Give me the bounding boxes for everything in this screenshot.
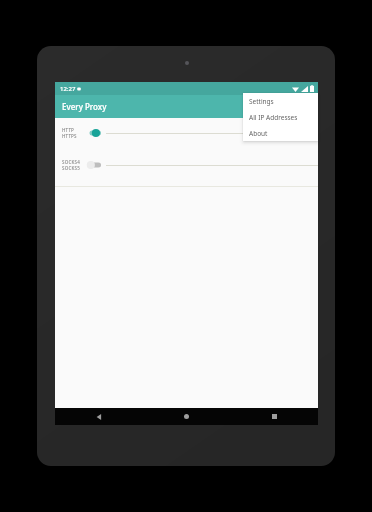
button[interactable]: About bbox=[243, 125, 318, 141]
button[interactable]: Recent apps bbox=[230, 408, 318, 425]
button[interactable]: Home bbox=[142, 408, 230, 425]
staticText: All IP Addresses bbox=[249, 113, 298, 122]
button[interactable]: Disable proxy bbox=[86, 127, 102, 139]
staticText: Settings bbox=[249, 97, 274, 106]
button[interactable]: Enable proxy bbox=[86, 159, 102, 171]
button[interactable]: SOCKS4 bbox=[55, 154, 318, 176]
staticText: Every Proxy bbox=[62, 101, 107, 112]
staticText: HTTP bbox=[62, 127, 75, 133]
button[interactable]: HTTP bbox=[55, 122, 318, 144]
button[interactable]: Back bbox=[55, 408, 142, 425]
staticText: About bbox=[249, 129, 268, 138]
button[interactable]: All IP Addresses bbox=[243, 109, 318, 125]
staticText: SOCKS5 bbox=[62, 165, 80, 171]
button[interactable]: Settings bbox=[243, 93, 318, 109]
staticText: 12:27 bbox=[60, 85, 76, 93]
staticText: HTTPS bbox=[62, 133, 77, 139]
staticText: SOCKS4 bbox=[62, 159, 80, 165]
